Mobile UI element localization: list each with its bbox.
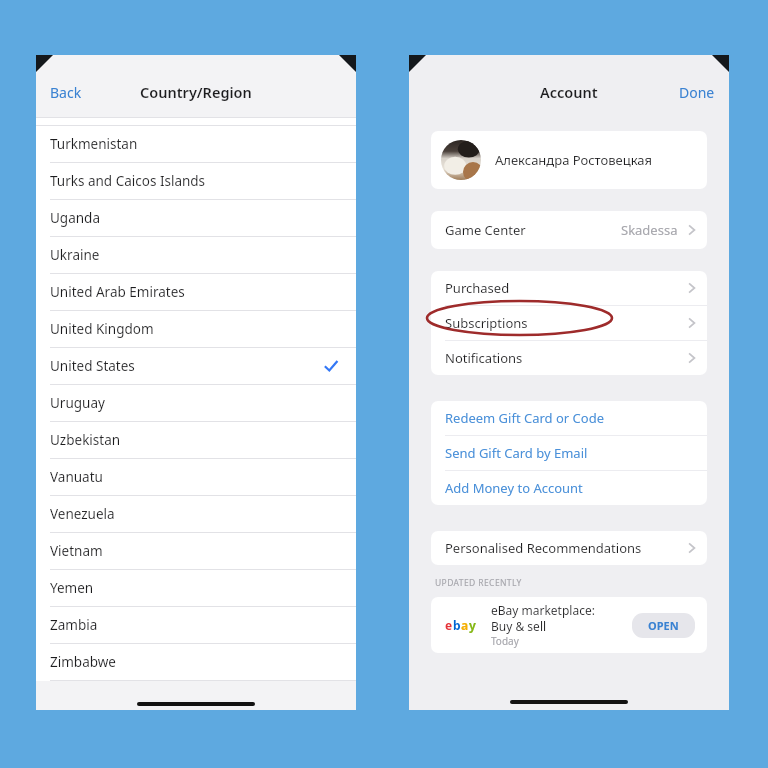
- button[interactable]: Game Center: [431, 211, 707, 249]
- button[interactable]: United States: [36, 348, 356, 385]
- button[interactable]: Yemen: [36, 570, 356, 607]
- button[interactable]: Done: [679, 83, 715, 102]
- staticText: Notifications: [445, 349, 523, 367]
- button[interactable]: United Kingdom: [36, 311, 356, 348]
- button[interactable]: Redeem Gift Card or Code: [431, 401, 707, 436]
- button[interactable]: United Arab Emirates: [36, 274, 356, 311]
- staticText: Александра Ростовецкая: [495, 151, 653, 169]
- button[interactable]: Turks and Caicos Islands: [36, 163, 356, 200]
- button[interactable]: Vanuatu: [36, 459, 356, 496]
- button[interactable]: Send Gift Card by Email: [431, 436, 707, 471]
- staticText: Zambia: [50, 616, 98, 634]
- staticText: Country/Region: [140, 82, 252, 102]
- button[interactable]: Uganda: [36, 200, 356, 237]
- button[interactable]: OPEN: [632, 613, 695, 638]
- staticText: e: [445, 617, 453, 633]
- staticText: Vanuatu: [50, 468, 103, 486]
- staticText: y: [469, 617, 476, 633]
- staticText: Ukraine: [50, 246, 100, 264]
- staticText: OPEN: [648, 618, 679, 633]
- staticText: Uzbekistan: [50, 431, 121, 449]
- staticText: Vietnam: [50, 542, 103, 560]
- button[interactable]: Александра Ростовецкая: [431, 131, 707, 189]
- button[interactable]: Purchased: [431, 271, 707, 306]
- staticText: Subscriptions: [445, 314, 528, 332]
- button[interactable]: e: [431, 597, 707, 653]
- button[interactable]: Subscriptions: [431, 306, 707, 341]
- staticText: Purchased: [445, 279, 510, 297]
- staticText: Venezuela: [50, 505, 115, 523]
- staticText: eBay marketplace:: [491, 602, 595, 618]
- staticText: Skadessa: [621, 221, 678, 239]
- staticText: Today: [491, 634, 519, 648]
- staticText: Turkmenistan: [50, 135, 138, 153]
- button[interactable]: Venezuela: [36, 496, 356, 533]
- button[interactable]: Uruguay: [36, 385, 356, 422]
- button[interactable]: Zambia: [36, 607, 356, 644]
- button[interactable]: Uzbekistan: [36, 422, 356, 459]
- staticText: United Arab Emirates: [50, 283, 185, 301]
- button[interactable]: Notifications: [431, 341, 707, 375]
- staticText: Zimbabwe: [50, 653, 116, 671]
- button[interactable]: Ukraine: [36, 237, 356, 274]
- staticText: United States: [50, 357, 135, 375]
- button[interactable]: Zimbabwe: [36, 644, 356, 681]
- staticText: Uruguay: [50, 394, 105, 412]
- staticText: UPDATED RECENTLY: [435, 577, 522, 589]
- staticText: Personalised Recommendations: [445, 539, 642, 557]
- button[interactable]: Turkmenistan: [36, 126, 356, 163]
- staticText: Buy & sell: [491, 618, 547, 634]
- staticText: Turks and Caicos Islands: [50, 172, 206, 190]
- staticText: Add Money to Account: [445, 479, 583, 497]
- staticText: Uganda: [50, 209, 100, 227]
- button[interactable]: Add Money to Account: [431, 471, 707, 505]
- staticText: a: [461, 617, 469, 633]
- button[interactable]: Personalised Recommendations: [431, 531, 707, 565]
- staticText: Send Gift Card by Email: [445, 444, 588, 462]
- staticText: Game Center: [445, 221, 526, 239]
- staticText: Account: [540, 82, 598, 102]
- staticText: Redeem Gift Card or Code: [445, 409, 604, 427]
- staticText: b: [453, 617, 461, 633]
- button[interactable]: Vietnam: [36, 533, 356, 570]
- staticText: Yemen: [50, 579, 94, 597]
- staticText: United Kingdom: [50, 320, 154, 338]
- button[interactable]: Back: [50, 83, 82, 102]
